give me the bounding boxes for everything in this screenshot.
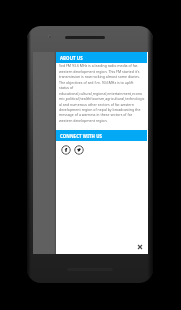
- staticText: western development region. This FM star…: [59, 69, 140, 74]
- button[interactable]: Facebook: [61, 145, 71, 155]
- staticText: transmission is now rocking almost some …: [59, 74, 140, 79]
- staticText: development region of nepal by broadcast…: [59, 107, 141, 112]
- button[interactable]: CONNECT WITH US: [56, 130, 147, 141]
- staticText: mic,political,health/tourism,agricultura…: [59, 96, 145, 101]
- staticText: status of: [59, 85, 74, 90]
- staticText: Sed FM 93.6 MHz is a leading radio media…: [59, 63, 139, 68]
- staticText: message of a warness in these sectors of…: [59, 112, 133, 117]
- staticText: western development region.: [59, 118, 108, 123]
- button[interactable]: Twitter: [74, 145, 84, 155]
- button[interactable]: Close: [135, 242, 144, 251]
- button[interactable]: ABOUT US: [56, 52, 147, 63]
- staticText: ABOUT US: [60, 55, 83, 61]
- staticText: al and numerous other sectors of far-wes…: [59, 102, 134, 107]
- staticText: educational,cultural,regional,entertainm…: [59, 91, 143, 96]
- staticText: CONNECT WITH US: [60, 133, 103, 139]
- staticText: The objectives of sed f.m. 93.6MHz is to…: [59, 80, 134, 85]
